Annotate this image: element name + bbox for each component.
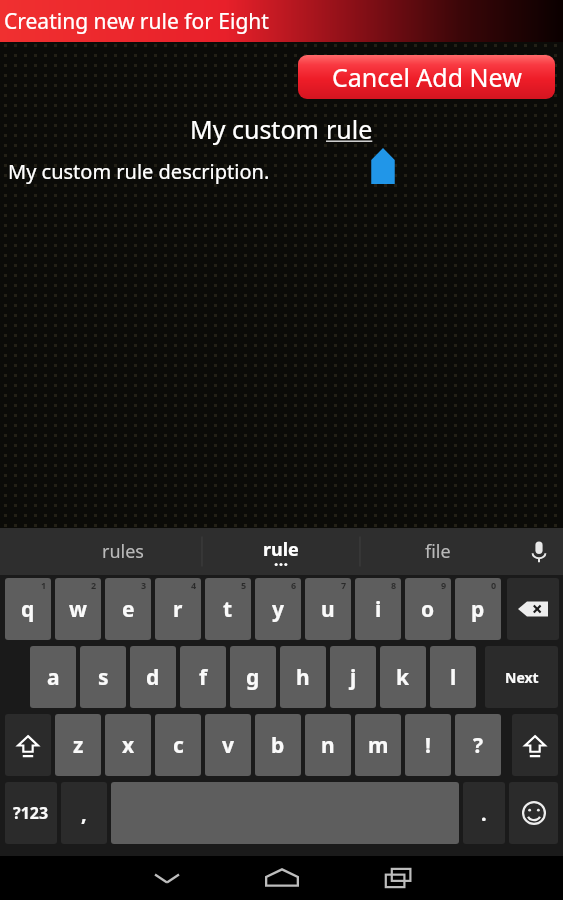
staticText: 5 [241,579,247,591]
staticText: My custom [190,112,326,146]
staticText: 3 [141,579,147,591]
staticText: r [173,595,183,624]
staticText: a [47,663,60,692]
staticText: t [223,595,233,624]
staticText: 9 [441,579,447,591]
button[interactable]: e [105,578,151,640]
staticText: My custom rule description. [8,158,270,185]
button[interactable]: p [455,578,501,640]
button[interactable]: ! [405,714,451,776]
button[interactable]: Home [245,856,319,900]
button[interactable]: x [105,714,151,776]
staticText: 6 [291,579,297,591]
button[interactable]: rules [44,528,202,575]
button[interactable]: m [355,714,401,776]
staticText: w [69,595,87,624]
staticText: , [81,800,87,827]
button[interactable]: rule [202,528,360,575]
button[interactable]: ? [455,714,501,776]
staticText: b [271,731,285,760]
staticText: g [246,663,260,692]
staticText: e [122,595,135,624]
staticText: z [73,731,84,760]
button[interactable]: c [155,714,201,776]
button[interactable]: ?123 [5,782,57,844]
button[interactable]: n [305,714,351,776]
button[interactable]: Shift [5,714,51,776]
staticText: q [21,595,35,624]
staticText: p [471,595,485,624]
button[interactable]: t [205,578,251,640]
button[interactable]: w [55,578,101,640]
staticText: x [122,731,135,760]
staticText: h [296,663,310,692]
button[interactable]: , [61,782,107,844]
button[interactable]: d [130,646,176,708]
staticText: ? [473,731,484,760]
staticText: i [375,595,382,624]
staticText: 4 [191,579,197,591]
staticText: ! [425,731,431,760]
button[interactable]: v [205,714,251,776]
button[interactable]: Shift [512,714,558,776]
button[interactable]: Cancel Add New [298,55,555,99]
button[interactable]: y [255,578,301,640]
staticText: j [350,663,357,692]
button[interactable]: b [255,714,301,776]
staticText: m [368,731,389,760]
button[interactable]: q [5,578,51,640]
staticText: . [481,800,487,827]
staticText: rule [263,537,299,562]
button[interactable]: f [180,646,226,708]
staticText: y [272,595,284,624]
button[interactable]: g [230,646,276,708]
staticText: Next [505,668,539,687]
button[interactable]: s [80,646,126,708]
staticText: 2 [91,579,97,591]
staticText: l [450,663,457,692]
button[interactable]: . [463,782,505,844]
staticText: k [396,663,410,692]
staticText: 7 [341,579,347,591]
button[interactable]: h [280,646,326,708]
button[interactable]: z [55,714,101,776]
staticText: c [173,731,184,760]
staticText: Creating new rule for Eight [4,7,269,36]
button[interactable]: r [155,578,201,640]
button[interactable]: Recent apps [362,856,436,900]
staticText: file [425,539,451,564]
button[interactable]: Backspace [507,578,559,640]
button[interactable]: a [30,646,76,708]
button[interactable]: Voice input [515,528,563,575]
button[interactable]: j [330,646,376,708]
staticText: f [199,663,208,692]
button[interactable]: l [430,646,476,708]
staticText: u [321,595,335,624]
staticText: o [421,595,435,624]
button[interactable]: My custom [0,110,563,148]
staticText: 8 [391,579,397,591]
staticText: rule [326,112,373,146]
button[interactable]: u [305,578,351,640]
other: Text cursor handle [369,148,397,184]
button[interactable]: Next [485,646,558,708]
staticText: s [98,663,109,692]
staticText: d [146,663,160,692]
staticText: ?123 [13,802,49,824]
staticText: 1 [41,579,47,591]
button[interactable]: i [355,578,401,640]
button[interactable]: My custom rule description. [0,155,563,187]
button[interactable]: Emoji [509,782,558,844]
button[interactable]: k [380,646,426,708]
staticText: n [321,731,335,760]
button[interactable]: o [405,578,451,640]
button[interactable]: file [360,528,515,575]
staticText: v [222,731,234,760]
staticText: rules [102,539,144,564]
staticText: Cancel Add New [332,60,522,94]
button[interactable]: Hide keyboard [130,856,204,900]
staticText: 0 [491,579,497,591]
